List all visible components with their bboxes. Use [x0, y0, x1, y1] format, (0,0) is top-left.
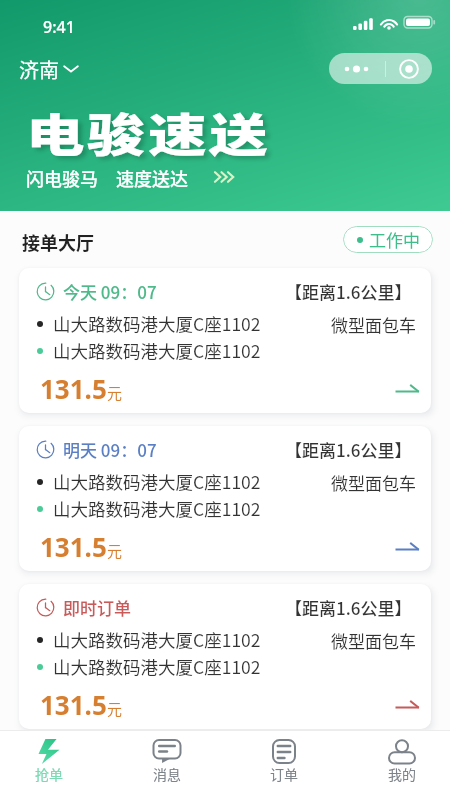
staticText: 山大路数码港大厦C座1102 [53, 311, 261, 336]
button[interactable]: 明天 09：07 [19, 426, 431, 571]
staticText: 闪电骏马 [26, 165, 98, 191]
staticText: 抢单 [35, 764, 63, 784]
staticText: 即时订单 [63, 595, 131, 620]
button[interactable]: 小程序菜单 [329, 53, 432, 84]
button[interactable]: 抢单 [0, 731, 103, 800]
staticText: 我的 [388, 764, 416, 784]
button[interactable]: 今天 09：07 [19, 268, 431, 413]
staticText: 速度送达 [116, 165, 188, 191]
staticText: 元 [107, 698, 123, 720]
staticText: 山大路数码港大厦C座1102 [53, 469, 261, 494]
staticText: 【距离1.6公里】 [285, 595, 412, 620]
staticText: 电骏速送 [26, 100, 272, 165]
staticText: 山大路数码港大厦C座1102 [53, 627, 261, 652]
staticText: 元 [107, 540, 123, 562]
staticText: 山大路数码港大厦C座1102 [53, 654, 261, 679]
staticText: 接单大厅 [22, 229, 94, 255]
staticText: 微型面包车 [331, 628, 416, 653]
staticText: 元 [107, 382, 123, 404]
staticText: 济南 [19, 55, 59, 84]
staticText: 【距离1.6公里】 [285, 279, 412, 304]
staticText: 订单 [270, 764, 298, 784]
button[interactable]: 消息 [113, 731, 221, 800]
staticText: 131.5 [40, 687, 107, 722]
button[interactable]: 我的 [348, 731, 450, 800]
staticText: 微型面包车 [331, 470, 416, 495]
button[interactable]: 订单 [230, 731, 338, 800]
button[interactable]: 济南 [19, 55, 79, 84]
staticText: 消息 [153, 764, 181, 784]
staticText: 明天 09：07 [63, 437, 157, 462]
staticText: 9:41 [43, 16, 75, 38]
button[interactable]: 即时订单 [19, 584, 431, 729]
staticText: 微型面包车 [331, 312, 416, 337]
button[interactable]: 工作中 [343, 226, 433, 253]
staticText: 今天 09：07 [63, 279, 157, 304]
staticText: 131.5 [40, 371, 107, 406]
staticText: 工作中 [369, 227, 420, 252]
staticText: 山大路数码港大厦C座1102 [53, 496, 261, 521]
staticText: 【距离1.6公里】 [285, 437, 412, 462]
staticText: 131.5 [40, 529, 107, 564]
staticText: 山大路数码港大厦C座1102 [53, 338, 261, 363]
